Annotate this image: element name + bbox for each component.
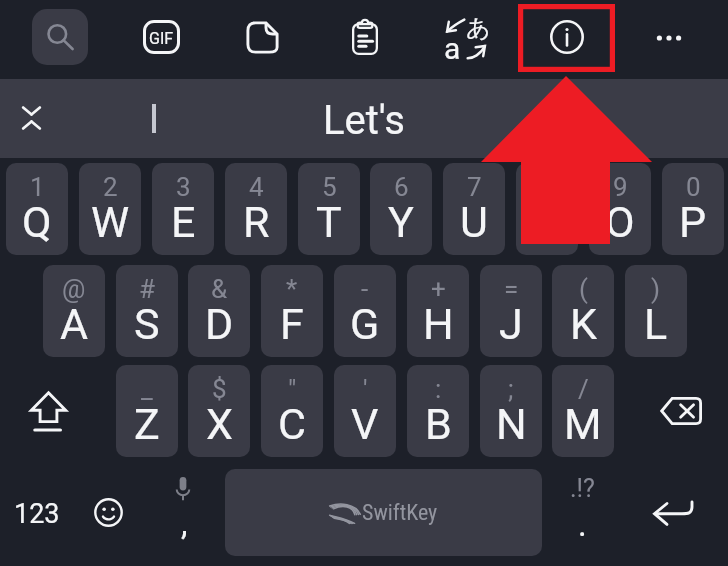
staticText: N — [496, 399, 527, 449]
staticText: S — [134, 299, 160, 349]
staticText: _ — [141, 374, 153, 404]
button[interactable]: ( — [552, 265, 614, 357]
staticText: ) — [651, 274, 661, 304]
button[interactable]: & — [188, 265, 250, 357]
staticText: C — [278, 399, 306, 449]
button[interactable]: 1 — [6, 163, 68, 255]
staticText: X — [206, 399, 233, 449]
button[interactable]: More options — [649, 18, 689, 58]
staticText: 2 — [103, 172, 118, 202]
button[interactable]: * — [261, 265, 323, 357]
staticText: D — [205, 299, 234, 349]
button[interactable]: + — [407, 265, 469, 357]
button[interactable]: Clipboard — [342, 13, 387, 61]
staticText: ; — [508, 374, 514, 404]
button[interactable]: Period — [551, 469, 613, 556]
staticText: J — [499, 299, 523, 349]
button[interactable]: " — [261, 365, 323, 457]
button[interactable]: _ — [116, 365, 178, 457]
staticText: a — [444, 31, 461, 66]
button[interactable]: Backspace — [634, 365, 728, 457]
button[interactable]: 2 — [79, 163, 141, 255]
button[interactable]: Translate — [441, 13, 491, 65]
button[interactable]: / — [552, 365, 614, 457]
button[interactable]: Collapse — [11, 97, 52, 138]
staticText: ( — [579, 274, 588, 304]
staticText: / — [578, 374, 589, 404]
staticText: P — [679, 197, 707, 247]
staticText: K — [570, 299, 597, 349]
staticText: F — [280, 299, 304, 349]
button[interactable]: 4 — [225, 163, 287, 255]
button[interactable]: ' — [334, 365, 396, 457]
staticText: W — [91, 197, 130, 247]
staticText: A — [60, 299, 89, 349]
button[interactable]: 6 — [370, 163, 432, 255]
button[interactable]: $ — [188, 365, 250, 457]
staticText: R — [243, 197, 270, 247]
staticText: 0 — [686, 172, 701, 202]
staticText: , — [181, 504, 188, 543]
button[interactable]: 3 — [152, 163, 214, 255]
staticText: . — [578, 505, 587, 544]
staticText: GIF — [149, 29, 174, 48]
button[interactable]: 7 — [443, 163, 505, 255]
button[interactable]: 8 — [516, 163, 578, 255]
button[interactable]: GIF — [137, 15, 186, 59]
button[interactable]: 9 — [589, 163, 651, 255]
staticText: : — [435, 374, 442, 404]
staticText: SwiftKey — [362, 500, 438, 526]
staticText: 6 — [394, 172, 409, 202]
staticText: G — [350, 299, 380, 349]
staticText: B — [425, 399, 452, 449]
staticText: 3 — [176, 172, 191, 202]
staticText: L — [644, 299, 668, 349]
staticText: 7 — [467, 172, 482, 202]
button[interactable]: 0 — [662, 163, 724, 255]
staticText: @ — [62, 274, 86, 304]
staticText: 9 — [613, 172, 628, 202]
staticText: 1 — [30, 172, 45, 202]
staticText: 4 — [249, 172, 264, 202]
button[interactable]: # — [116, 265, 178, 357]
button[interactable]: : — [407, 365, 469, 457]
staticText: - — [361, 274, 369, 304]
staticText: U — [460, 197, 488, 247]
staticText: H — [423, 299, 454, 349]
button[interactable]: Search — [32, 9, 88, 65]
staticText: # — [139, 274, 156, 304]
button[interactable]: ; — [480, 365, 542, 457]
button[interactable]: = — [480, 265, 542, 357]
staticText: $ — [212, 374, 227, 404]
staticText: = — [504, 274, 519, 304]
staticText: 5 — [322, 172, 337, 202]
staticText: I — [541, 197, 553, 247]
button[interactable]: ) — [625, 265, 687, 357]
staticText: Q — [22, 197, 52, 247]
staticText: あ — [466, 13, 491, 43]
staticText: " — [288, 374, 297, 404]
staticText: T — [316, 197, 342, 247]
staticText: Y — [388, 197, 414, 247]
button[interactable]: @ — [43, 265, 105, 357]
button[interactable]: Space — [225, 469, 542, 556]
button[interactable]: 5 — [298, 163, 360, 255]
staticText: Let's — [323, 97, 405, 144]
button[interactable]: Emoji — [78, 469, 138, 556]
staticText: 123 — [14, 498, 60, 530]
staticText: ' — [363, 374, 368, 404]
staticText: .!? — [570, 474, 595, 503]
staticText: & — [211, 274, 228, 304]
button[interactable]: - — [334, 265, 396, 357]
staticText: * — [286, 274, 298, 304]
staticText: V — [351, 399, 379, 449]
button[interactable]: Stickers — [240, 14, 285, 60]
button[interactable]: Shift — [6, 365, 108, 457]
staticText: + — [431, 274, 446, 304]
button[interactable]: Info — [545, 15, 589, 59]
staticText: M — [564, 399, 602, 449]
button[interactable]: Enter — [630, 469, 722, 556]
button[interactable]: 123 — [6, 469, 68, 556]
button[interactable]: Voice input and comma — [150, 469, 216, 556]
